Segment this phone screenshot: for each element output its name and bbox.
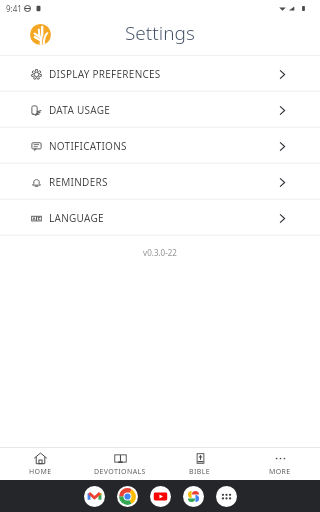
button[interactable]: DEVOTIONALS — [80, 448, 160, 480]
staticText: DATA USAGE — [49, 103, 110, 117]
button[interactable]: Gmail — [84, 486, 105, 507]
staticText: BIBLE — [189, 467, 211, 477]
button[interactable]: NOTIFICATIONS — [0, 128, 320, 164]
button[interactable]: YouTube — [150, 486, 171, 507]
staticText: DISPLAY PREFERENCES — [49, 67, 161, 81]
button[interactable]: MORE — [240, 448, 320, 480]
button[interactable]: Photos — [183, 486, 204, 507]
button[interactable]: BIBLE — [160, 448, 240, 480]
button[interactable]: All apps — [216, 486, 237, 507]
staticText: Settings — [125, 20, 195, 46]
button[interactable]: HOME — [0, 448, 80, 480]
staticText: NOTIFICATIONS — [49, 139, 127, 153]
staticText: HOME — [29, 467, 52, 477]
button[interactable]: DATA USAGE — [0, 92, 320, 128]
staticText: MORE — [269, 467, 291, 477]
staticText: 9:41 — [6, 3, 22, 14]
button[interactable]: LANGUAGE — [0, 200, 320, 236]
staticText: REMINDERS — [49, 175, 108, 189]
staticText: v0.3.0-22 — [0, 247, 320, 258]
button[interactable]: REMINDERS — [0, 164, 320, 200]
button[interactable]: App logo — [30, 24, 51, 45]
button[interactable]: Chrome — [117, 486, 138, 507]
staticText: DEVOTIONALS — [94, 467, 146, 477]
staticText: LANGUAGE — [49, 211, 104, 225]
button[interactable]: DISPLAY PREFERENCES — [0, 56, 320, 92]
